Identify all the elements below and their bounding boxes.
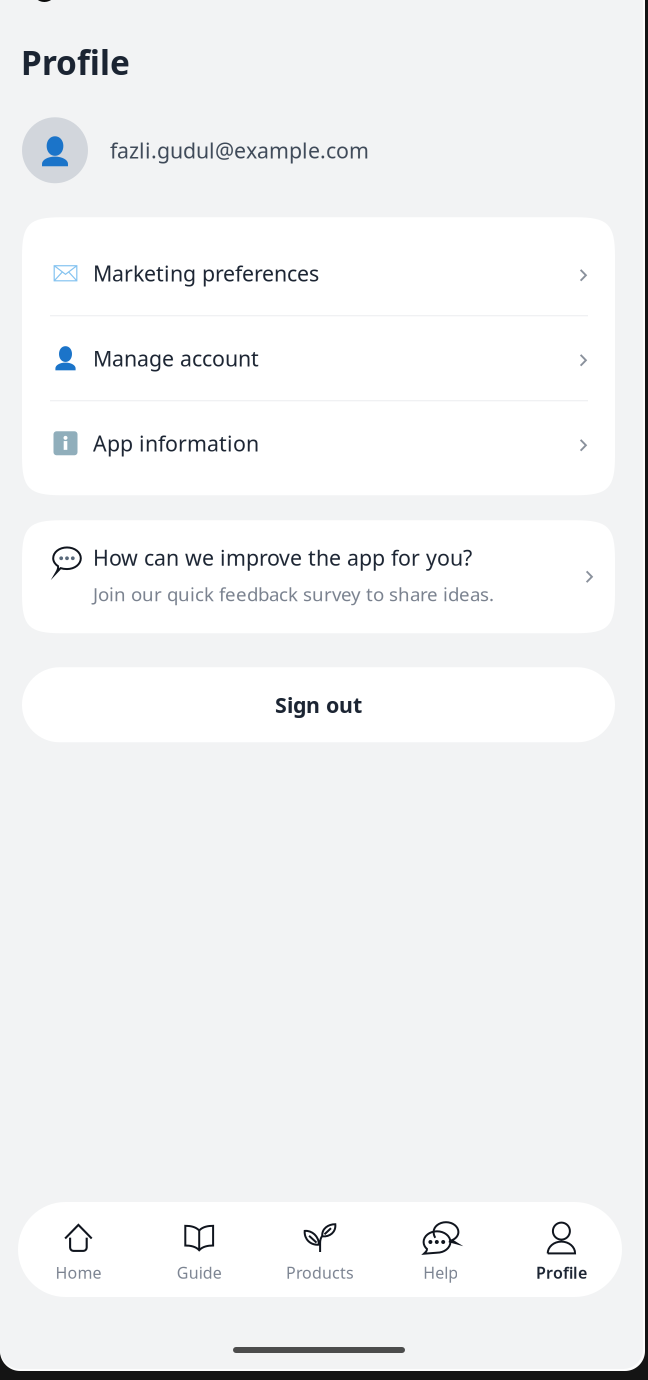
button[interactable]: Marketing preferences [22, 231, 615, 315]
staticText: Profile [21, 40, 130, 84]
staticText: How can we improve the app for you? [93, 543, 472, 572]
staticText: fazli.gudul@example.com [110, 136, 369, 164]
button[interactable]: Products [260, 1202, 380, 1297]
button[interactable]: How can we improve the app for you? [22, 520, 615, 633]
button[interactable]: Profile [501, 1202, 622, 1297]
staticText: Manage account [93, 344, 259, 372]
button[interactable]: Sign out [22, 667, 615, 742]
staticText: Guide [177, 1262, 222, 1283]
button[interactable]: Manage account [22, 316, 615, 400]
staticText: Help [423, 1262, 458, 1283]
button[interactable]: Help [380, 1202, 501, 1297]
staticText: Home [55, 1262, 101, 1283]
button[interactable]: Home [18, 1202, 139, 1297]
staticText: Profile [536, 1262, 587, 1283]
button[interactable]: App information [22, 401, 615, 485]
staticText: Products [286, 1262, 354, 1283]
staticText: Marketing preferences [93, 259, 319, 287]
staticText: Join our quick feedback survey to share … [93, 582, 494, 606]
staticText: Sign out [275, 691, 362, 719]
button[interactable]: Guide [139, 1202, 260, 1297]
staticText: App information [93, 429, 259, 457]
